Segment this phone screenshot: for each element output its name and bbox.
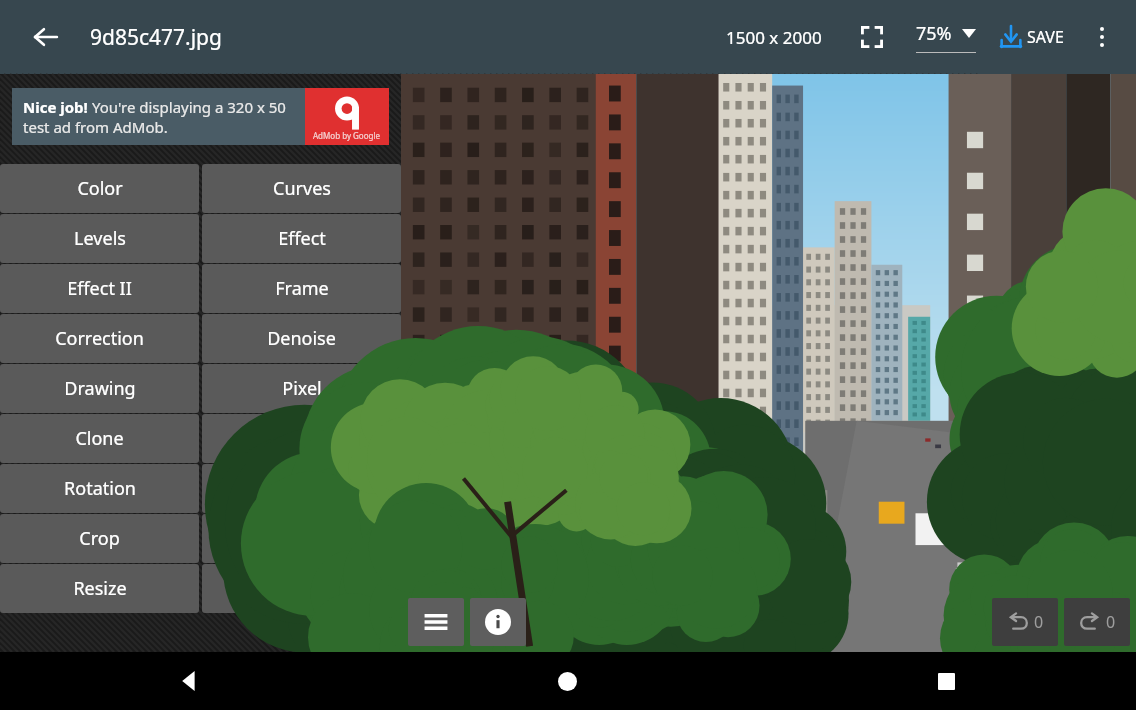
staticText: Pixel [282,376,322,401]
button[interactable]: Crop (Free) [202,514,401,563]
staticText: Levels [74,226,126,251]
button[interactable]: Redo [1064,598,1130,646]
button[interactable]: Back [0,652,378,710]
staticText: AdMob by Google [313,130,381,141]
button[interactable]: Drawing [0,364,199,413]
button[interactable]: Color [0,164,199,213]
staticText: 9d85c477.jpg [90,23,222,52]
button[interactable]: Denoise [202,314,401,363]
staticText: test ad from AdMob. [23,117,168,137]
button[interactable]: Text/Image [202,414,401,463]
button[interactable]: Nice job! [12,88,389,145]
button[interactable]: Info [470,598,526,646]
button[interactable]: Straighten [202,464,401,513]
staticText: 75% [916,21,952,46]
staticText: Effect II [67,276,132,301]
staticText: Effect [278,226,326,251]
staticText: Drawing [64,376,136,401]
staticText: Resize [73,576,127,601]
staticText: Nice job! [23,97,92,117]
staticText: Crop [79,526,120,551]
button[interactable]: SAVE [996,20,1066,54]
staticText: 0 [1106,611,1116,633]
button[interactable]: Back [24,15,68,59]
button[interactable]: Rotation [0,464,199,513]
staticText: Color [77,176,123,201]
staticText: SAVE [1027,26,1064,48]
button[interactable]: 75% [914,21,978,53]
staticText: Straighten [257,476,346,501]
button[interactable]: Resize [0,564,199,613]
button[interactable]: More options [1080,15,1124,59]
staticText: 1500 x 2000 [726,26,822,49]
button[interactable]: Frame [202,264,401,313]
button[interactable]: Undo [992,598,1058,646]
button[interactable]: Menu [408,598,464,646]
staticText: You're displaying a 320 x 50 [92,97,286,117]
staticText: Clone [75,426,124,451]
button[interactable]: Clone [0,414,199,463]
staticText: Text/Image [254,426,350,451]
staticText: Correction [55,326,144,351]
button[interactable]: Recent apps [757,652,1136,710]
button[interactable]: Levels [0,214,199,263]
button[interactable]: Home [378,652,757,710]
staticText: Curves [273,176,331,201]
button[interactable]: Curves [202,164,401,213]
staticText: Frame [275,276,329,301]
button[interactable]: Effect [202,214,401,263]
staticText: Rotation [64,476,136,501]
button[interactable]: Fullscreen [850,15,894,59]
button[interactable]: Effect II [0,264,199,313]
staticText: Denoise [267,326,336,351]
button[interactable]: Fit [202,564,401,613]
button[interactable]: Pixel [202,364,401,413]
staticText: 0 [1034,611,1044,633]
button[interactable]: Correction [0,314,199,363]
button[interactable]: Crop [0,514,199,563]
